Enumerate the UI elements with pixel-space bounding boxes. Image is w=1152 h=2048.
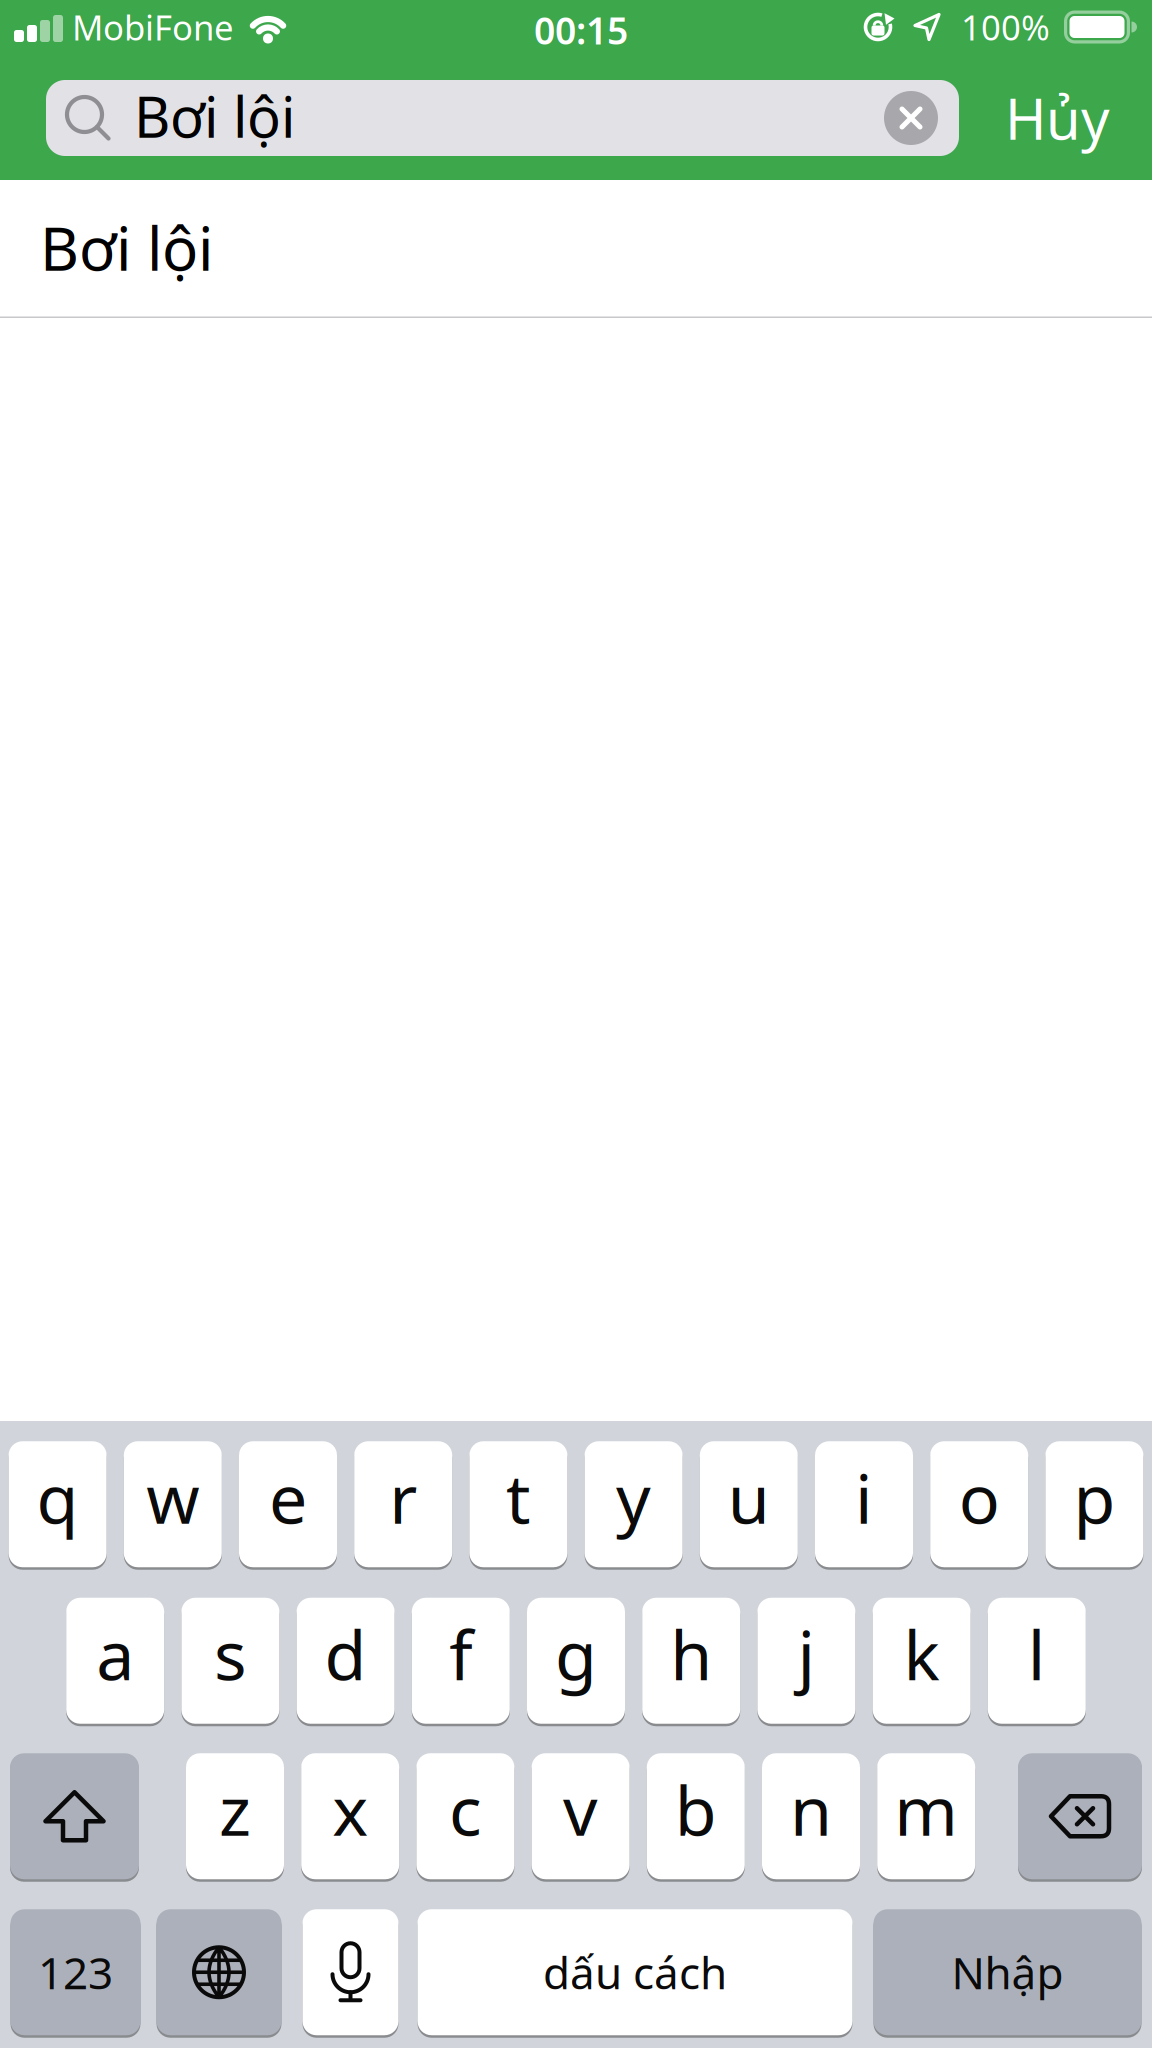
staticText: o [959,1452,1000,1542]
staticText: p [1073,1452,1115,1542]
button[interactable]: z [186,1752,284,1880]
staticText: v [563,1764,598,1854]
button[interactable]: e [239,1440,337,1568]
staticText: Hủy [1005,81,1110,155]
staticText: Bơi lội [40,208,213,287]
button[interactable]: w [124,1440,222,1568]
staticText: a [96,1609,134,1699]
button[interactable]: Next keyboard [156,1908,281,2036]
button[interactable]: x [301,1752,399,1880]
staticText: 123 [38,1943,113,2001]
button[interactable]: j [757,1596,855,1725]
staticText: Nhập [951,1943,1063,2001]
button[interactable]: q [9,1440,107,1568]
staticText: q [37,1452,79,1542]
button[interactable]: m [877,1752,975,1880]
button[interactable]: Nhập [873,1908,1141,2036]
staticText: c [449,1764,482,1854]
staticText: r [389,1452,417,1542]
staticText: Bơi lội [134,79,295,153]
staticText: h [670,1609,712,1699]
button[interactable]: f [412,1596,510,1725]
button[interactable]: Bơi lội [0,180,1152,316]
staticText: dấu cách [543,1943,727,2001]
button[interactable]: v [532,1752,630,1880]
button[interactable]: g [527,1596,625,1725]
staticText: z [219,1764,251,1854]
button[interactable]: r [354,1440,452,1568]
button[interactable]: n [762,1752,860,1880]
button[interactable]: s [181,1596,279,1725]
staticText: w [146,1452,199,1542]
staticText: y [616,1452,651,1542]
button[interactable]: l [988,1596,1086,1725]
staticText: 100% [961,4,1050,50]
button[interactable]: t [469,1440,567,1568]
button[interactable]: Hủy [1005,81,1110,155]
button[interactable]: Dictation [302,1908,398,2036]
staticText: b [675,1764,717,1854]
staticText: e [269,1452,307,1542]
staticText: MobiFone [72,4,234,50]
button[interactable]: 123 [10,1908,140,2036]
staticText: u [728,1452,770,1542]
staticText: f [449,1609,472,1699]
button[interactable]: p [1045,1440,1143,1568]
staticText: g [555,1609,597,1699]
button[interactable]: c [416,1752,514,1880]
button[interactable]: h [642,1596,740,1725]
staticText: d [325,1609,367,1699]
staticText: s [214,1609,247,1699]
staticText: n [790,1764,832,1854]
staticText: l [1028,1609,1046,1699]
button[interactable]: d [297,1596,395,1725]
button[interactable]: o [930,1440,1028,1568]
button[interactable]: a [66,1596,164,1725]
button[interactable]: Clear text [884,91,938,145]
button[interactable]: u [700,1440,798,1568]
button[interactable]: y [585,1440,683,1568]
staticText: k [904,1609,940,1699]
staticText: t [506,1452,531,1542]
button[interactable]: dấu cách [417,1908,852,2036]
button[interactable]: i [815,1440,913,1568]
button[interactable]: b [647,1752,745,1880]
staticText: m [894,1764,958,1854]
button[interactable]: k [873,1596,971,1725]
button[interactable]: Delete [1018,1752,1142,1880]
staticText: j [797,1609,815,1699]
button[interactable]: Shift [10,1752,139,1880]
staticText: i [855,1452,873,1542]
staticText: x [332,1764,368,1854]
staticText: 00:15 [534,5,628,55]
